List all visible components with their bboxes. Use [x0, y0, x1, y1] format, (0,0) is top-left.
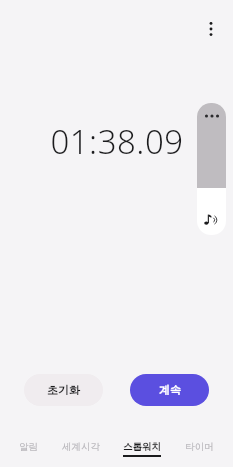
button[interactable]: More options	[196, 14, 226, 44]
staticText: 스톱워치	[123, 441, 161, 453]
button[interactable]: 스톱워치	[119, 439, 165, 459]
staticText: 01:38.09	[50, 119, 184, 164]
button[interactable]: 타이머	[181, 439, 218, 459]
staticText: 알림	[19, 441, 38, 453]
staticText: 초기화	[47, 383, 80, 397]
staticText: 세계시각	[62, 441, 100, 453]
button[interactable]: 세계시각	[58, 439, 104, 459]
staticText: 계속	[159, 383, 181, 397]
staticText: 타이머	[185, 441, 214, 453]
button[interactable]: 초기화	[24, 374, 103, 406]
button[interactable]: 계속	[130, 374, 209, 406]
button[interactable]: 알림	[15, 439, 42, 459]
button[interactable]: Volume slider	[197, 103, 226, 235]
